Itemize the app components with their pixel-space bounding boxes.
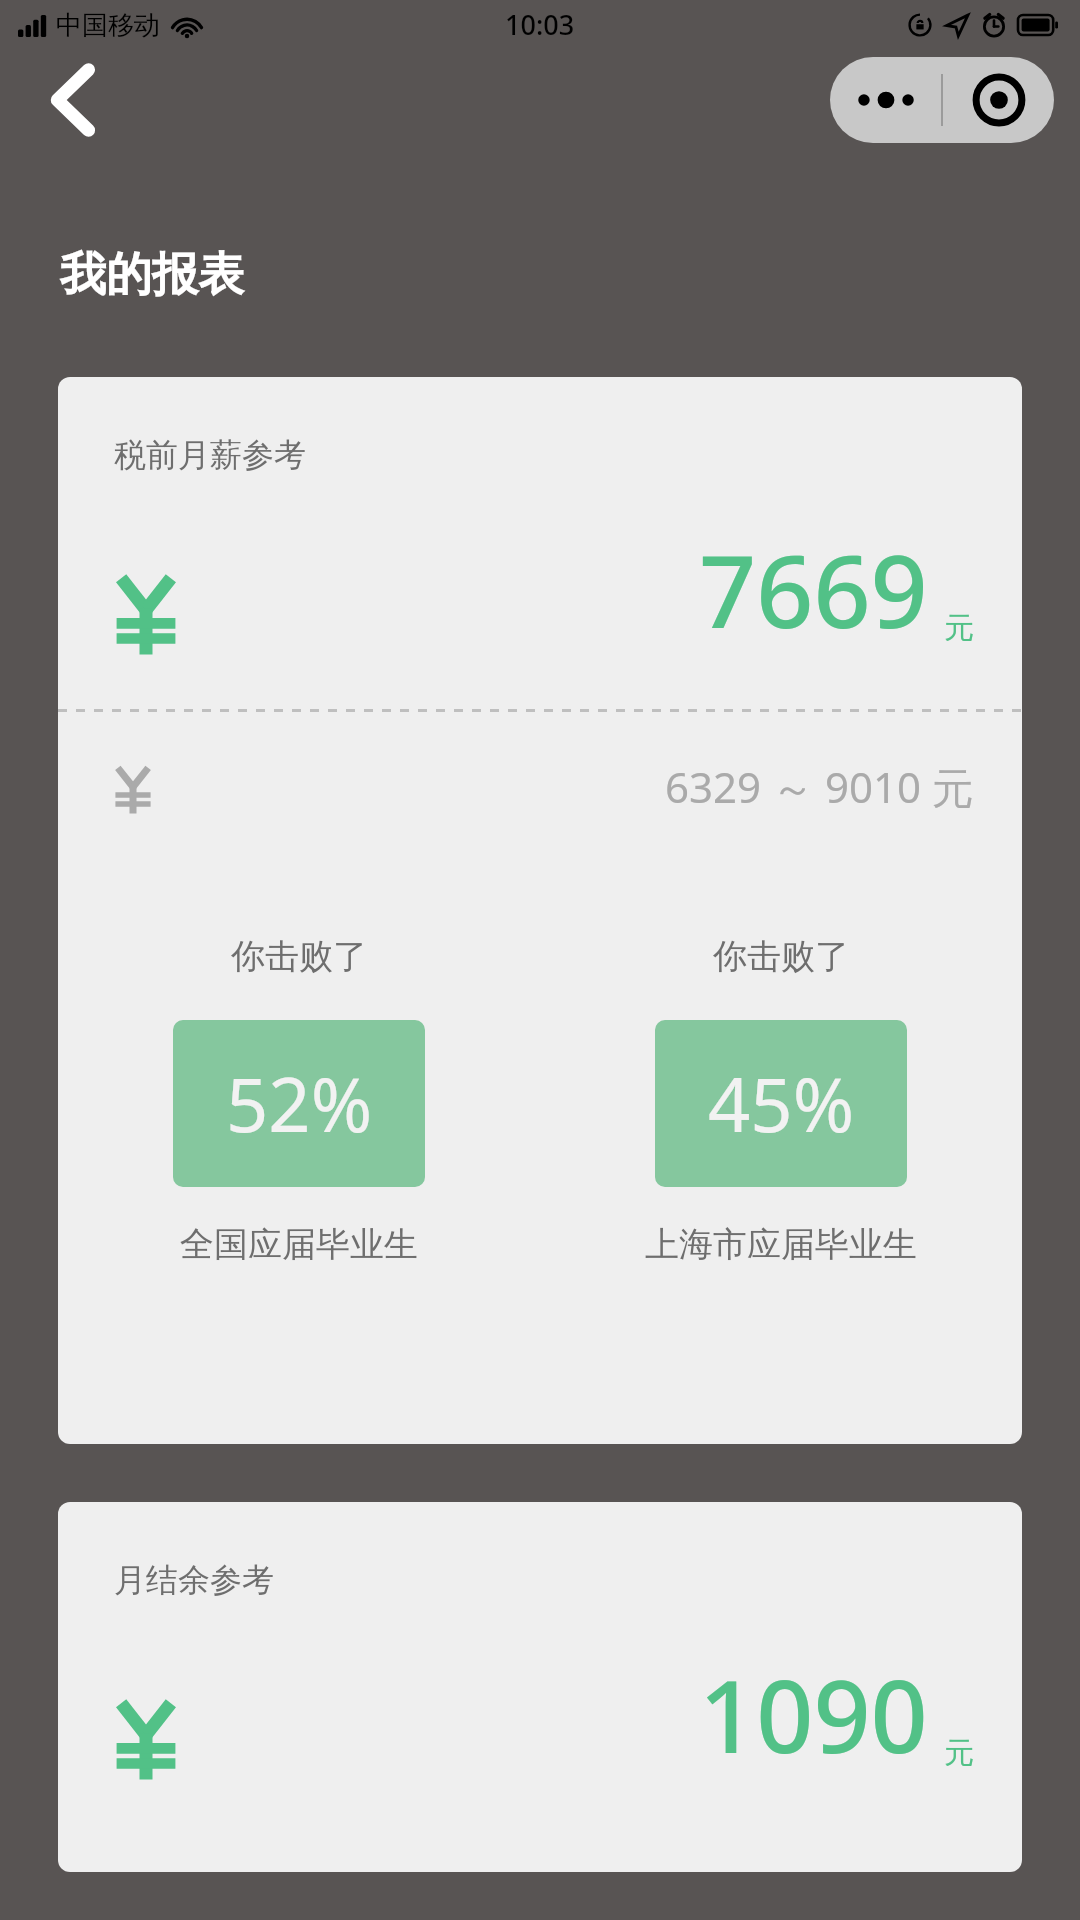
staticText: 我的报表	[60, 246, 244, 304]
staticText: 元	[944, 1734, 974, 1772]
button[interactable]: Back	[30, 58, 114, 142]
button[interactable]: Close	[943, 57, 1054, 143]
staticText: 7669	[699, 521, 928, 657]
button[interactable]: 你击败了	[540, 935, 1022, 1266]
staticText: 52%	[226, 1053, 373, 1154]
staticText: 45%	[708, 1053, 855, 1154]
button[interactable]: More	[830, 57, 941, 143]
staticText: 全国应届毕业生	[180, 1223, 418, 1266]
staticText: 税前月薪参考	[114, 435, 306, 475]
button[interactable]: 税前月薪参考	[58, 377, 1022, 1444]
button[interactable]: 你击败了	[58, 935, 540, 1266]
staticText: 元	[944, 609, 974, 647]
staticText: 1090	[699, 1646, 928, 1782]
staticText: 中国移动	[56, 9, 160, 42]
staticText: 你击败了	[713, 935, 849, 978]
staticText: 10:03	[505, 6, 575, 43]
button[interactable]: 月结余参考	[58, 1502, 1022, 1872]
staticText: 6329 ～ 9010 元	[665, 758, 974, 815]
staticText: 上海市应届毕业生	[645, 1223, 917, 1266]
staticText: 月结余参考	[114, 1560, 274, 1600]
staticText: 你击败了	[231, 935, 367, 978]
